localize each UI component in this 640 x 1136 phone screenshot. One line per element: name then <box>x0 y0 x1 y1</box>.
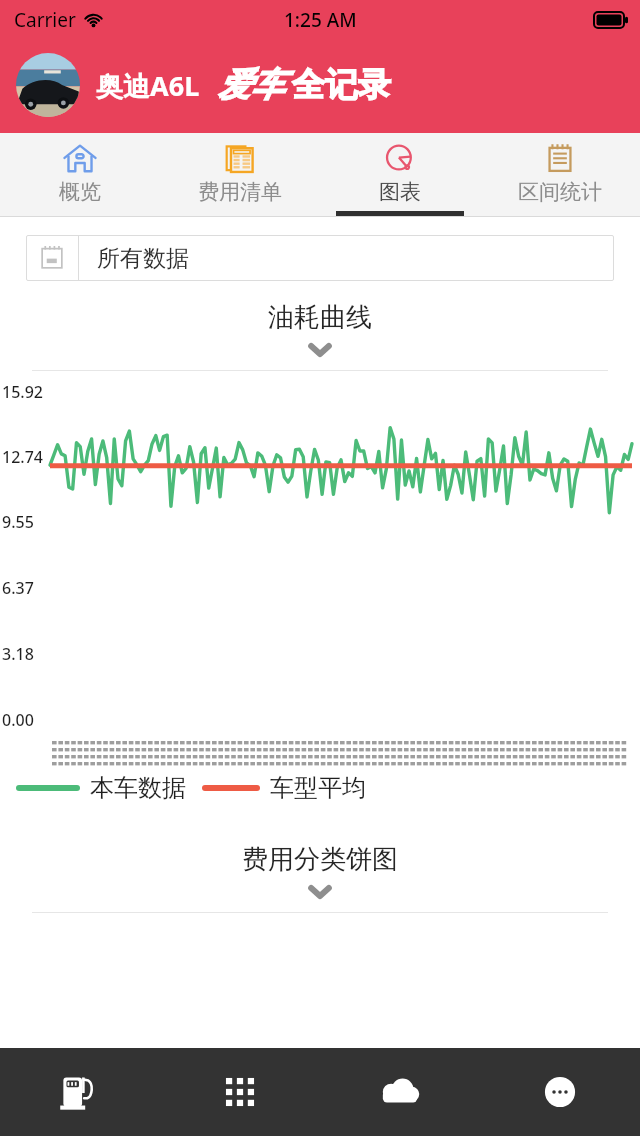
button[interactable]: 费用清单 <box>160 133 320 216</box>
staticText: 1:25 AM <box>284 7 357 33</box>
button[interactable]: 油耗曲线 <box>0 281 640 371</box>
staticText: 费用分类饼图 <box>242 843 398 876</box>
button[interactable]: 所有数据 <box>26 235 614 281</box>
button[interactable]: Cloud sync <box>320 1048 480 1136</box>
staticText: 3.18 <box>2 643 34 665</box>
staticText: 6.37 <box>2 577 34 599</box>
button[interactable]: Refuel <box>0 1048 160 1136</box>
staticText: 全记录 <box>292 64 391 106</box>
staticText: 12.74 <box>2 446 43 468</box>
button[interactable]: 图表 <box>320 133 480 216</box>
staticText: 本车数据 <box>90 773 186 803</box>
button[interactable]: 费用分类饼图 <box>0 833 640 913</box>
staticText: 车型平均 <box>270 773 366 803</box>
button[interactable]: Car avatar <box>16 53 80 117</box>
button[interactable]: 区间统计 <box>480 133 640 216</box>
button[interactable]: More <box>480 1048 640 1136</box>
staticText: 概览 <box>59 179 101 205</box>
staticText: 奥迪A6L <box>96 67 200 104</box>
button[interactable]: Apps <box>160 1048 320 1136</box>
staticText: 0.00 <box>2 709 34 731</box>
staticText: 所有数据 <box>97 244 189 273</box>
staticText: 油耗曲线 <box>268 301 372 334</box>
staticText: 9.55 <box>2 511 34 533</box>
button[interactable]: 概览 <box>0 133 160 216</box>
staticText: 图表 <box>379 179 421 205</box>
staticText: Carrier <box>14 7 76 33</box>
staticText: 区间统计 <box>518 179 602 205</box>
staticText: 15.92 <box>2 381 43 403</box>
staticText: 爱车 <box>218 64 284 106</box>
staticText: 费用清单 <box>198 179 282 205</box>
